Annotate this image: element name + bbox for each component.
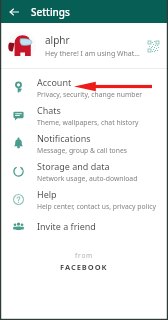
staticText: FACEBOOK (60, 262, 108, 272)
button[interactable]: alphr (0, 23, 168, 68)
staticText: Message, group & call tones (37, 146, 127, 155)
staticText: alphr (45, 33, 70, 47)
button[interactable]: Storage and data (0, 157, 168, 185)
button[interactable]: Invite a friend (0, 213, 168, 239)
staticText: Privacy, security, change number (37, 90, 143, 99)
staticText: Chats (37, 104, 61, 116)
staticText: from (75, 251, 94, 260)
button[interactable]: Back (5, 3, 22, 20)
staticText: Storage and data (37, 160, 110, 172)
button[interactable]: Help (0, 185, 168, 213)
staticText: Account (37, 76, 72, 88)
staticText: Help center, contact us, privacy policy (37, 202, 156, 211)
staticText: Theme, wallpapers, chat history (37, 118, 139, 127)
staticText: Notifications (37, 132, 91, 144)
button[interactable]: Account (0, 73, 168, 101)
staticText: Network usage, auto-download (37, 174, 138, 183)
staticText: Help (37, 188, 57, 200)
staticText: Settings (31, 5, 70, 19)
button[interactable]: Notifications (0, 129, 168, 157)
button[interactable]: QR code (145, 38, 161, 54)
staticText: Invite a friend (37, 220, 96, 232)
button[interactable]: Chats (0, 101, 168, 129)
staticText: Hey there! I am using WhatsA... (45, 49, 141, 59)
